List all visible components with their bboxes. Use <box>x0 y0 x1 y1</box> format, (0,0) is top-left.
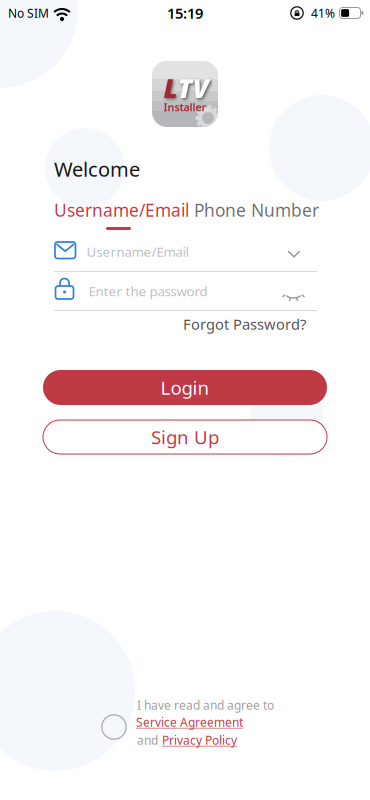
staticText: Installer <box>163 100 206 114</box>
staticText: Username/Email <box>54 198 189 221</box>
button[interactable]: Privacy Policy <box>162 732 237 748</box>
button[interactable]: Sign Up <box>43 420 327 454</box>
button[interactable]: Login <box>43 370 327 405</box>
button[interactable]: Username/Email <box>54 198 189 221</box>
staticText: Login <box>160 375 209 400</box>
staticText: Service Agreement <box>136 714 243 730</box>
button[interactable] <box>101 714 127 740</box>
staticText: Welcome <box>54 156 140 182</box>
button[interactable] <box>54 273 304 307</box>
staticText: Forgot Password? <box>183 314 306 334</box>
staticText: Enter the password <box>88 282 207 300</box>
staticText: 15:19 <box>167 3 203 23</box>
staticText: Privacy Policy <box>162 732 237 748</box>
staticText: Sign Up <box>151 425 219 449</box>
button[interactable]: Service Agreement <box>136 714 243 730</box>
staticText: 41% <box>311 5 335 21</box>
staticText: I have read and agree to <box>137 697 274 713</box>
button[interactable] <box>54 234 304 268</box>
button[interactable]: Phone Number <box>194 198 319 221</box>
staticText: TV <box>177 70 208 106</box>
staticText: Phone Number <box>194 198 319 221</box>
staticText: and <box>137 732 158 748</box>
staticText: No SIM <box>8 5 49 21</box>
staticText: L <box>163 70 177 106</box>
button[interactable]: Forgot Password? <box>183 314 306 334</box>
staticText: Username/Email <box>86 243 188 260</box>
